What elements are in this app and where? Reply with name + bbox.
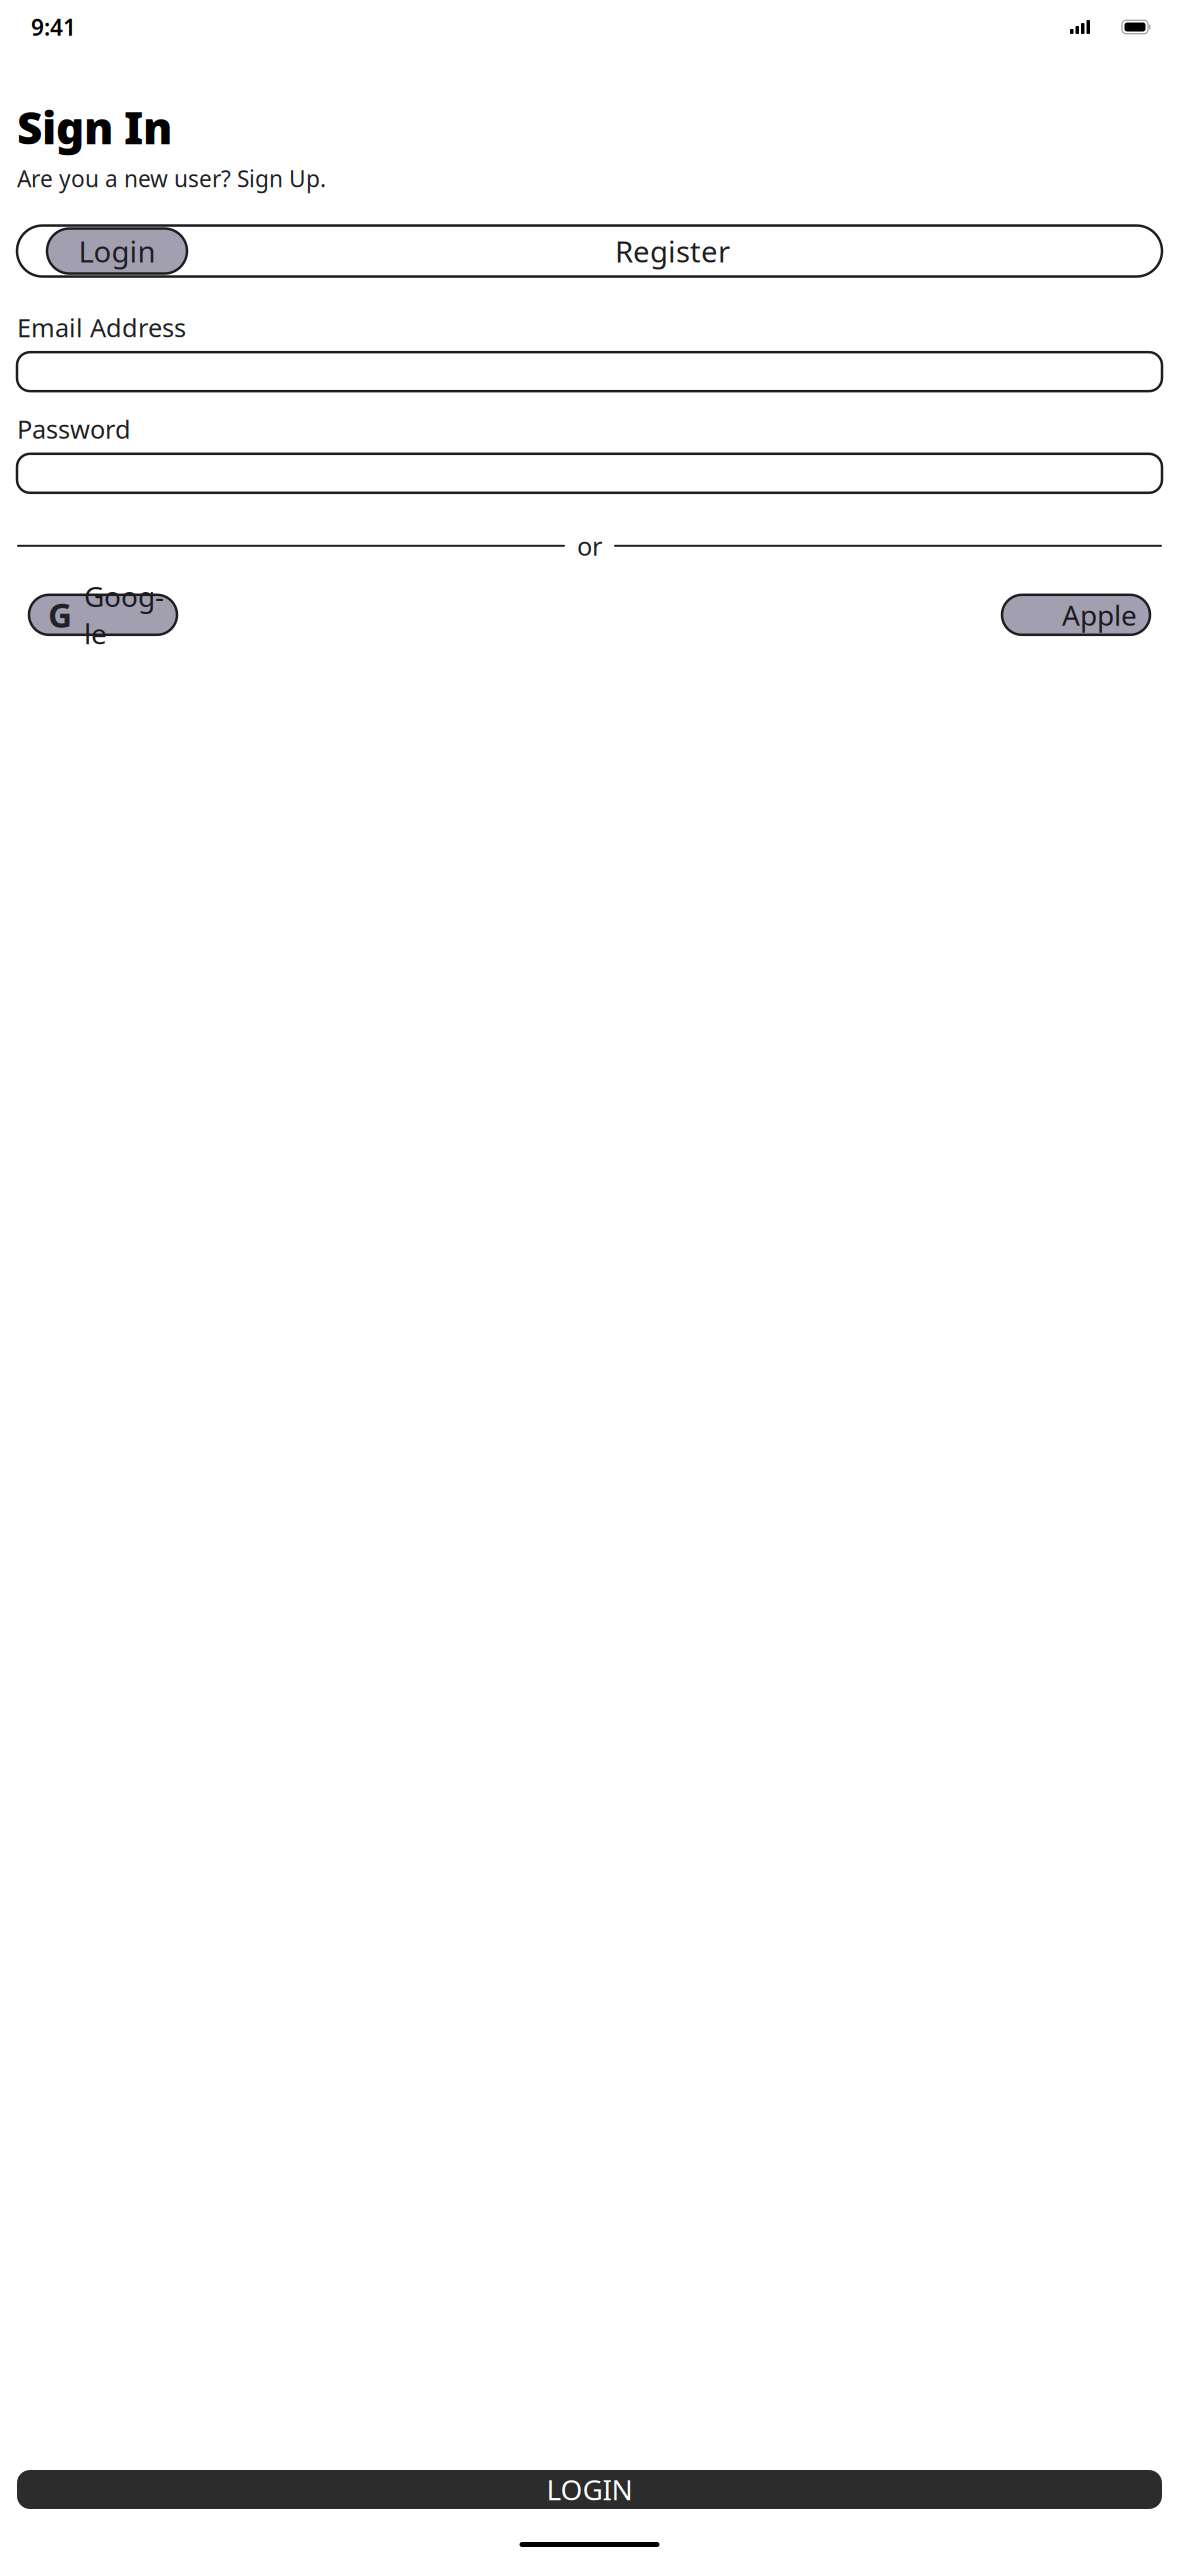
button[interactable] xyxy=(17,454,1162,493)
button[interactable]: Register xyxy=(187,228,1158,273)
staticText: Apple xyxy=(1062,596,1137,633)
staticText: LOGIN xyxy=(546,2471,632,2508)
button[interactable] xyxy=(1002,595,1150,635)
staticText: G xyxy=(48,593,72,637)
button[interactable] xyxy=(17,352,1162,391)
staticText: 9:41 xyxy=(31,12,76,42)
staticText: Register xyxy=(615,232,730,271)
button[interactable]: LOGIN xyxy=(17,2470,1162,2509)
staticText: Google xyxy=(84,578,164,652)
staticText: Password xyxy=(17,412,131,446)
staticText: Email Address xyxy=(17,310,186,344)
staticText: or xyxy=(577,529,602,563)
staticText: Are you a new user? Sign Up. xyxy=(17,163,326,193)
button[interactable]: Are you a new user? Sign Up. xyxy=(17,163,326,193)
staticText: Sign In xyxy=(17,98,172,156)
button[interactable]: Login xyxy=(47,228,187,273)
button[interactable]: G xyxy=(29,595,177,635)
staticText: Login xyxy=(78,232,155,271)
